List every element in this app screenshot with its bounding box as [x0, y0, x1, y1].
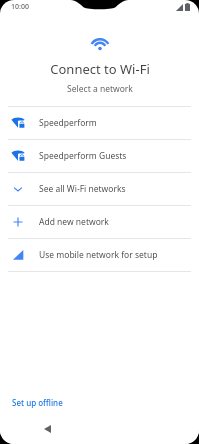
staticText: Use mobile network for setup	[39, 249, 158, 261]
other: Secured Wi-Fi network	[10, 115, 26, 131]
staticText: 10:00	[11, 2, 29, 12]
button[interactable]: Mobile network	[0, 239, 199, 271]
staticText: Add new network	[39, 216, 109, 228]
other: Add	[10, 214, 26, 230]
button[interactable]: Add	[0, 206, 199, 238]
button[interactable]: Expand	[0, 173, 199, 205]
button[interactable]: Secured Wi-Fi network	[0, 107, 199, 139]
staticText: Speedperform Guests	[39, 150, 127, 162]
other: Mobile network	[10, 247, 26, 263]
button[interactable]: Back	[36, 418, 58, 440]
staticText: Speedperform	[39, 117, 97, 129]
other: Secured Wi-Fi network	[10, 148, 26, 164]
button[interactable]: Secured Wi-Fi network	[0, 140, 199, 172]
staticText: Set up offline	[12, 397, 63, 408]
staticText: Connect to Wi-Fi	[50, 60, 150, 78]
button[interactable]: Set up offline	[6, 393, 69, 412]
staticText: See all Wi-Fi networks	[39, 183, 126, 195]
staticText: Select a network	[67, 83, 133, 95]
other: Expand	[10, 181, 26, 197]
